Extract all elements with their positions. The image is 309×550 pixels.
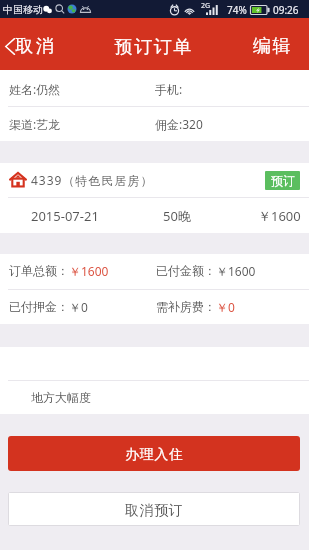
staticText: ￥1600 — [216, 263, 256, 279]
staticText: 2015-07-21 — [31, 207, 99, 225]
staticText: 取消 — [14, 35, 55, 58]
staticText: 74% — [227, 3, 247, 17]
staticText: ￥0 — [69, 299, 88, 315]
staticText: 订单总额： — [9, 263, 69, 278]
staticText: ￥1600 — [69, 263, 109, 279]
staticText: 手机: — [155, 81, 183, 97]
button[interactable]: 编辑 — [239, 18, 309, 70]
staticText: 办理入住 — [125, 446, 184, 464]
staticText: 预订 — [271, 173, 295, 188]
staticText: 姓名:仍然 — [9, 81, 61, 97]
staticText: ￥1600 — [258, 207, 301, 225]
staticText: 渠道:艺龙 — [9, 116, 61, 132]
staticText: 佣金:320 — [155, 116, 203, 132]
staticText: 编辑 — [252, 35, 291, 58]
button[interactable]: 取消 — [0, 18, 72, 70]
button[interactable]: 取消预订 — [9, 493, 299, 525]
staticText: 需补房费： — [156, 299, 216, 314]
staticText: 09:26 — [273, 3, 299, 17]
staticText: 中国移动 — [3, 3, 43, 16]
staticText: ￥0 — [216, 299, 235, 315]
staticText: 预订订单 — [114, 36, 192, 59]
staticText: 取消预订 — [125, 502, 184, 520]
staticText: 4339（特色民居房） — [31, 172, 154, 188]
staticText: 2G — [201, 1, 211, 11]
button[interactable]: 预订 — [265, 171, 300, 190]
staticText: 地方大幅度 — [31, 390, 91, 405]
staticText: 50晚 — [163, 207, 191, 225]
button[interactable]: 办理入住 — [8, 436, 300, 471]
staticText: 已付押金： — [9, 299, 69, 314]
staticText: 已付金额： — [156, 263, 216, 278]
